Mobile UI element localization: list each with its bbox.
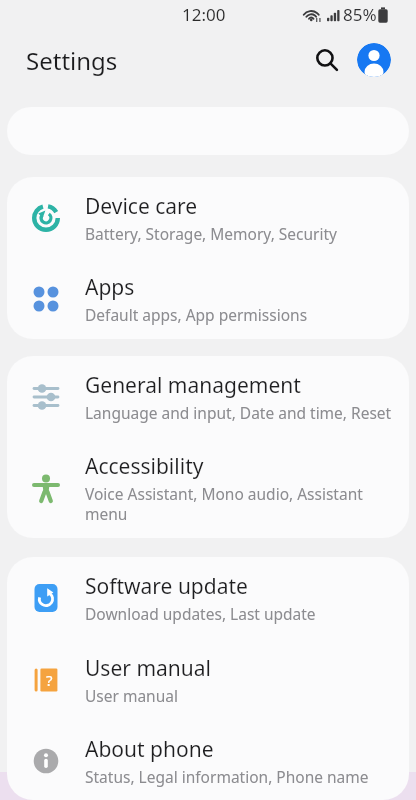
button[interactable]: General management xyxy=(7,356,409,438)
staticText: Voice Assistant, Mono audio, Assistant m… xyxy=(85,483,363,525)
staticText: User manual xyxy=(85,654,211,683)
button[interactable] xyxy=(307,40,347,80)
staticText: Language and input, Date and time, Reset xyxy=(85,402,392,423)
staticText: Accessibility xyxy=(85,452,204,481)
staticText: Apps xyxy=(85,273,135,302)
button[interactable] xyxy=(357,43,391,77)
staticText: Download updates, Last update xyxy=(85,603,316,624)
staticText: Status, Legal information, Phone name xyxy=(85,766,369,787)
button[interactable]: Apps xyxy=(7,258,409,339)
staticText: Settings xyxy=(26,44,118,77)
staticText: Default apps, App permissions xyxy=(85,304,308,325)
button[interactable]: Device care xyxy=(7,177,409,258)
button[interactable]: Accessibility xyxy=(7,438,409,538)
button[interactable]: About phone xyxy=(7,721,409,800)
staticText: 85% xyxy=(343,3,377,26)
staticText: Software update xyxy=(85,572,248,601)
staticText: Device care xyxy=(85,192,198,221)
staticText: Battery, Storage, Memory, Security xyxy=(85,223,338,244)
button[interactable]: Software update xyxy=(7,557,409,639)
staticText: User manual xyxy=(85,685,178,706)
staticText: 12:00 xyxy=(182,3,226,26)
staticText: About phone xyxy=(85,735,214,764)
button[interactable]: ? xyxy=(7,639,409,721)
staticText: General management xyxy=(85,371,301,400)
staticText: ? xyxy=(46,670,53,690)
